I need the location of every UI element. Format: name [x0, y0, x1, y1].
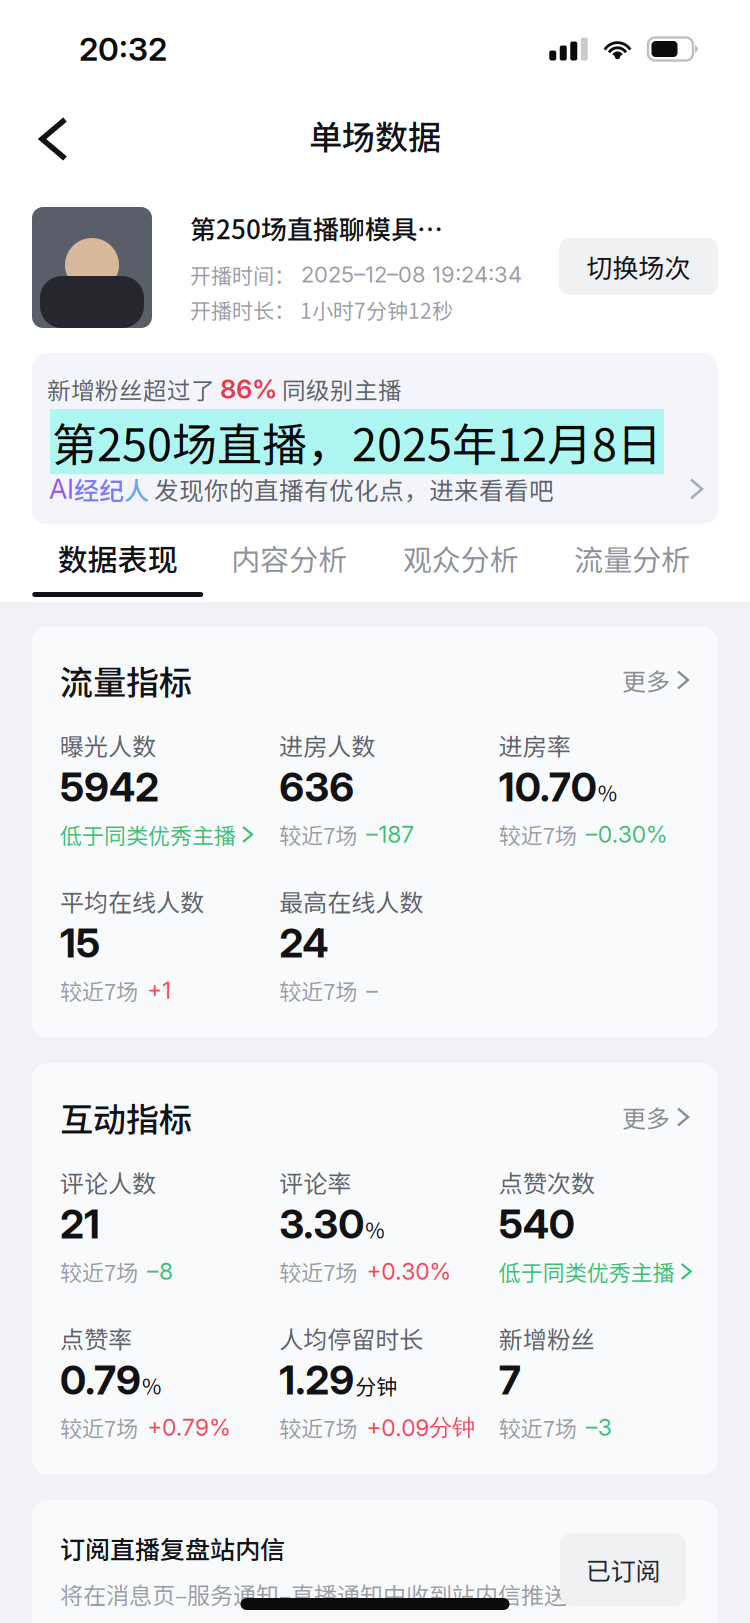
staticText: 较近7场: [499, 819, 577, 850]
staticText: –8: [147, 1258, 173, 1285]
staticText: 0.79: [60, 1356, 141, 1404]
staticText: 较近7场: [279, 1412, 357, 1443]
staticText: 86%: [220, 373, 277, 405]
staticText: 观众分析: [403, 537, 519, 579]
staticText: 流量分析: [574, 537, 690, 579]
staticText: –0.30%: [586, 821, 668, 848]
staticText: 评论率: [279, 1165, 351, 1199]
staticText: 低于同类优秀主播: [499, 1256, 675, 1287]
staticText: 流量指标: [60, 656, 192, 704]
staticText: 经纪: [74, 471, 124, 507]
staticText: +0.30%: [366, 1258, 451, 1285]
staticText: 较近7场: [499, 1412, 577, 1443]
staticText: 开播时间：: [190, 259, 295, 290]
staticText: 发现你的直播有优化点，进来看看吧: [149, 471, 554, 507]
staticText: %: [142, 1370, 161, 1401]
staticText: AI: [49, 473, 74, 505]
staticText: 7: [499, 1356, 521, 1404]
staticText: +0.09分钟: [366, 1413, 475, 1442]
staticText: 较近7场: [279, 1256, 357, 1287]
staticText: 15: [60, 919, 100, 967]
staticText: 新增粉丝: [499, 1321, 595, 1355]
staticText: 点赞次数: [499, 1165, 595, 1199]
staticText: 切换场次: [586, 248, 690, 285]
staticText: 636: [279, 763, 354, 811]
staticText: 订阅直播复盘站内信: [60, 1530, 285, 1566]
staticText: 曝光人数: [60, 728, 156, 762]
staticText: 进房人数: [279, 728, 375, 762]
staticText: 新增粉丝超过了: [47, 372, 220, 406]
staticText: 数据表现: [58, 536, 178, 580]
staticText: +1: [147, 977, 171, 1004]
staticText: 10.70: [499, 763, 597, 811]
staticText: 将在消息页–服务通知–直播通知中收到站内信推送: [60, 1577, 567, 1611]
staticText: 1.29: [279, 1356, 354, 1404]
button[interactable]: 更多: [622, 663, 688, 697]
button[interactable]: 流量分析: [546, 524, 718, 597]
button[interactable]: 新增粉丝超过了: [32, 353, 718, 524]
staticText: 内容分析: [231, 537, 347, 579]
staticText: 较近7场: [60, 975, 138, 1006]
staticText: 人: [124, 471, 149, 507]
staticText: 第250场直播聊模具…: [190, 209, 443, 247]
staticText: 第250场直播，2025年12月8日: [52, 409, 662, 474]
staticText: 较近7场: [60, 1412, 138, 1443]
staticText: 3.30: [279, 1200, 364, 1248]
staticText: 进房率: [499, 728, 571, 762]
staticText: 已订阅: [585, 1551, 660, 1588]
staticText: –: [366, 977, 378, 1004]
button[interactable]: 内容分析: [203, 524, 375, 597]
staticText: 24: [279, 919, 328, 967]
staticText: 人均停留时长: [279, 1321, 423, 1355]
staticText: 540: [499, 1200, 575, 1248]
button[interactable]: 切换场次: [559, 238, 718, 295]
staticText: 平均在线人数: [60, 884, 204, 918]
staticText: 分钟: [355, 1370, 397, 1401]
button[interactable]: 已订阅: [560, 1533, 686, 1606]
staticText: 20:32: [79, 30, 167, 68]
button[interactable]: 数据表现: [32, 524, 203, 597]
staticText: 更多: [622, 1100, 670, 1134]
staticText: +0.79%: [147, 1414, 231, 1441]
staticText: %: [365, 1214, 384, 1245]
staticText: 较近7场: [60, 1256, 138, 1287]
staticText: 开播时长：: [190, 294, 295, 325]
staticText: 较近7场: [279, 819, 357, 850]
staticText: 较近7场: [279, 975, 357, 1006]
staticText: 同级别主播: [277, 372, 402, 406]
button[interactable]: 更多: [622, 1100, 688, 1134]
staticText: 1小时7分钟12秒: [295, 294, 453, 325]
staticText: 单场数据: [309, 111, 441, 159]
staticText: 5942: [60, 763, 159, 811]
staticText: 更多: [622, 663, 670, 697]
staticText: 低于同类优秀主播: [60, 819, 236, 850]
staticText: 互动指标: [60, 1093, 192, 1141]
staticText: 21: [60, 1200, 100, 1248]
staticText: –187: [366, 821, 414, 848]
staticText: 评论人数: [60, 1165, 156, 1199]
staticText: 最高在线人数: [279, 884, 423, 918]
button[interactable]: Back: [18, 99, 89, 178]
staticText: 2025–12–08 19:24:34: [295, 261, 522, 288]
staticText: %: [598, 777, 617, 808]
staticText: 点赞率: [60, 1321, 132, 1355]
button[interactable]: 观众分析: [375, 524, 546, 597]
staticText: –3: [586, 1414, 612, 1441]
